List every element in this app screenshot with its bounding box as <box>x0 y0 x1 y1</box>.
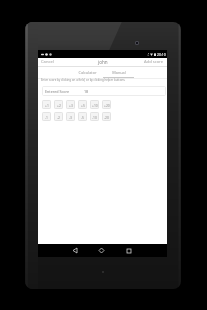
button[interactable]: Cancel <box>38 58 57 66</box>
button[interactable]: +2 <box>54 100 63 109</box>
staticText: Cancel <box>41 59 54 65</box>
staticText: +5 <box>81 103 85 107</box>
button[interactable]: +20 <box>102 100 111 109</box>
staticText: -5 <box>81 115 84 119</box>
staticText: +1 <box>45 103 49 107</box>
button[interactable]: +5 <box>78 100 87 109</box>
staticText: Calculator <box>78 70 97 75</box>
button[interactable]: Manual <box>103 67 134 78</box>
button[interactable]: Entered Score <box>42 86 166 96</box>
button[interactable]: +10 <box>90 100 99 109</box>
button[interactable]: Recent apps <box>124 244 134 257</box>
button[interactable]: Add score <box>141 58 167 66</box>
staticText: Enter score by clicking on a field, or b… <box>41 78 126 82</box>
staticText: +3 <box>69 103 73 107</box>
staticText: -20 <box>104 115 109 119</box>
button[interactable]: Calculator <box>72 67 103 78</box>
staticText: +10 <box>92 103 98 107</box>
button[interactable]: -20 <box>102 112 111 121</box>
staticText: -3 <box>69 115 72 119</box>
button[interactable]: -3 <box>66 112 75 121</box>
button[interactable]: -5 <box>78 112 87 121</box>
staticText: -10 <box>92 115 97 119</box>
button[interactable]: Back <box>70 244 80 257</box>
button[interactable]: -10 <box>90 112 99 121</box>
staticText: Manual <box>112 70 126 75</box>
staticText: 18 <box>84 89 89 94</box>
staticText: +20 <box>104 103 110 107</box>
staticText: Add score <box>144 59 164 65</box>
staticText: 20:10 <box>157 52 166 57</box>
staticText: -1 <box>45 115 48 119</box>
staticText: john <box>98 59 108 65</box>
button[interactable]: Home <box>96 244 106 257</box>
button[interactable]: +3 <box>66 100 75 109</box>
button[interactable]: +1 <box>42 100 51 109</box>
button[interactable]: -2 <box>54 112 63 121</box>
button[interactable]: -1 <box>42 112 51 121</box>
staticText: -2 <box>57 115 60 119</box>
staticText: +2 <box>57 103 61 107</box>
staticText: Entered Score <box>45 89 70 94</box>
